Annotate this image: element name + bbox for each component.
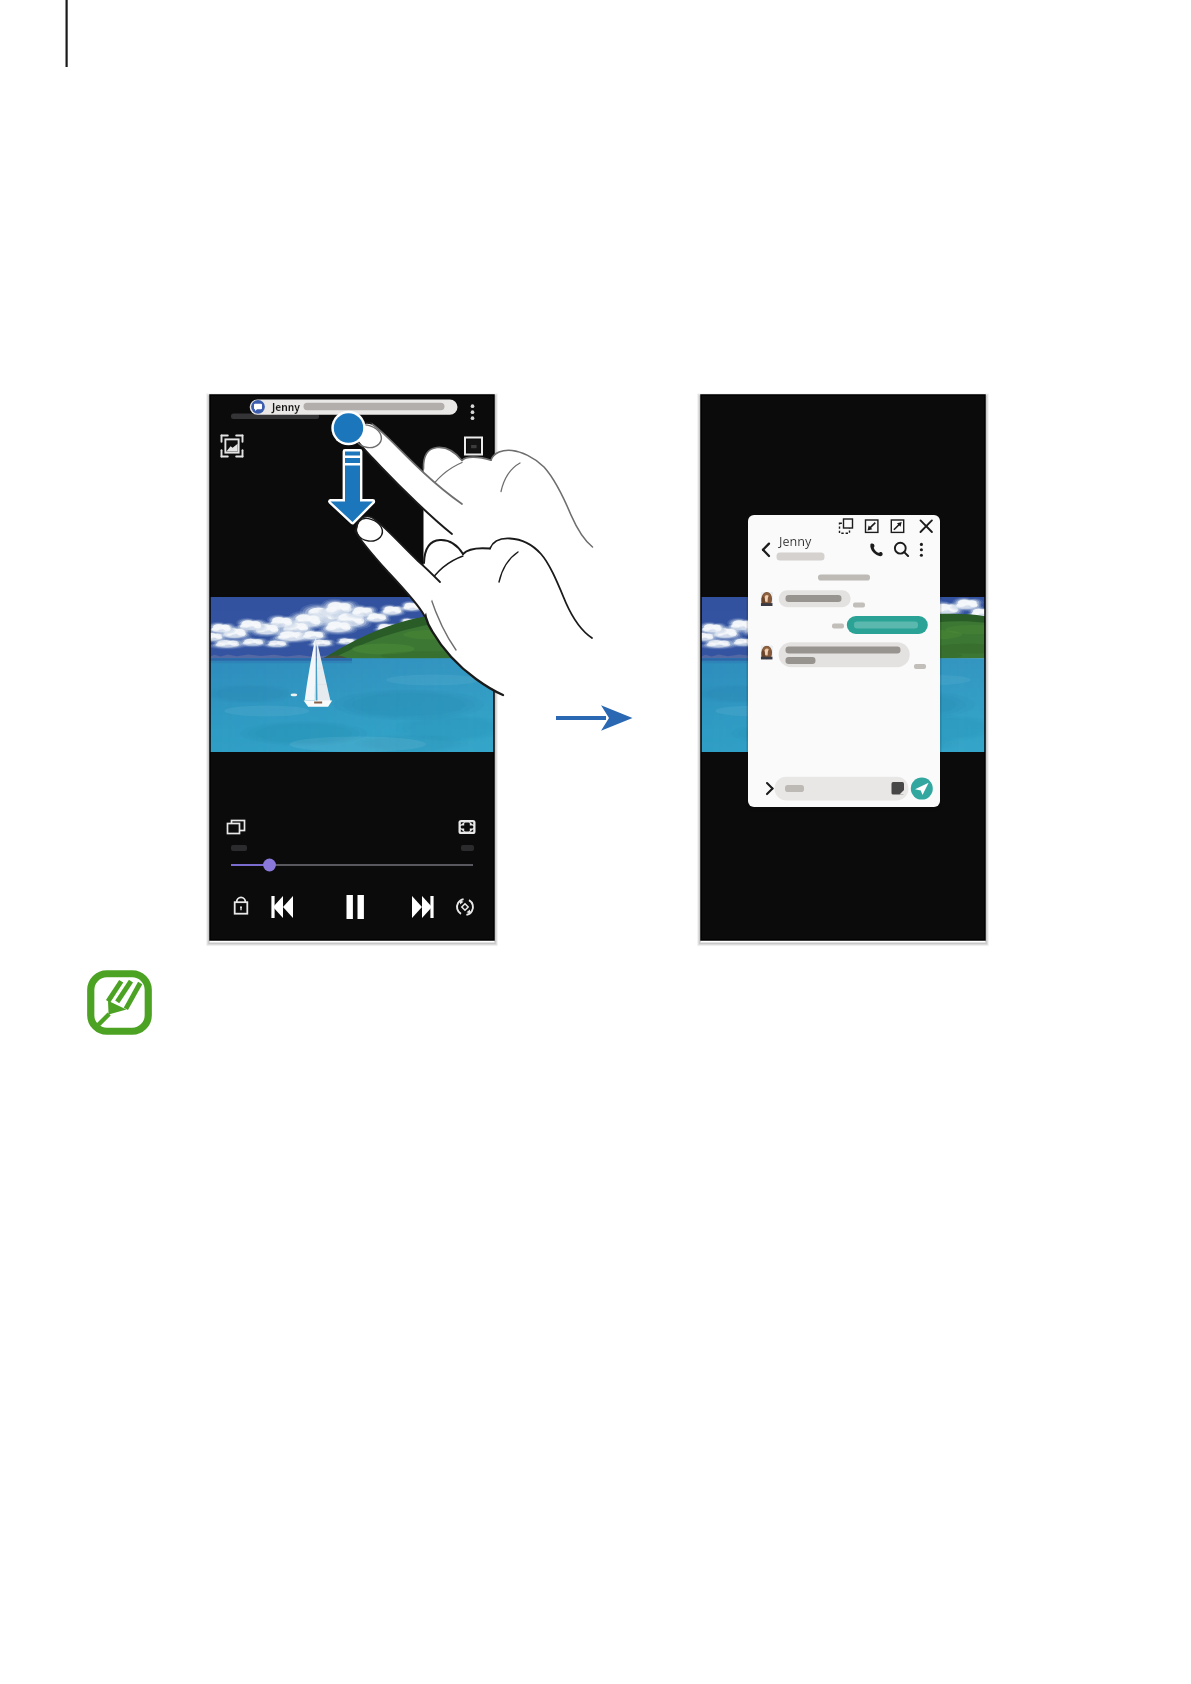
button[interactable]: Call: [864, 537, 888, 561]
button[interactable]: Detach window: [836, 513, 860, 537]
button[interactable]: Full screen: [452, 815, 482, 845]
button[interactable]: Picture in picture: [217, 815, 247, 845]
button[interactable]: Close window: [915, 513, 939, 537]
button[interactable]: Smart capture: [220, 434, 245, 459]
button[interactable]: More options: [462, 398, 484, 426]
button[interactable]: Back: [753, 537, 777, 561]
button[interactable]: Lock controls: [226, 897, 256, 927]
button[interactable]: Open in pop-up view: [462, 434, 487, 459]
button[interactable]: Message input: [774, 777, 910, 801]
button[interactable]: Pause: [330, 895, 366, 929]
button[interactable]: Send message: [911, 777, 935, 801]
staticText: Jenny: [779, 533, 812, 550]
button[interactable]: Message notification from Jenny: [249, 399, 458, 416]
button[interactable]: Search: [888, 537, 912, 561]
staticText: Jenny: [272, 400, 300, 414]
button[interactable]: Auto rotate: [450, 897, 480, 927]
button[interactable]: Next: [407, 897, 437, 927]
button[interactable]: Maximise window: [889, 513, 913, 537]
button[interactable]: Minimise window: [863, 513, 887, 537]
button[interactable]: More options: [910, 537, 934, 561]
button[interactable]: Previous: [268, 897, 298, 927]
